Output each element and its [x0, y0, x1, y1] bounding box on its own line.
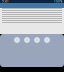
- staticText: 9:41: [2, 0, 9, 3]
- staticText: 100%: [54, 0, 62, 3]
